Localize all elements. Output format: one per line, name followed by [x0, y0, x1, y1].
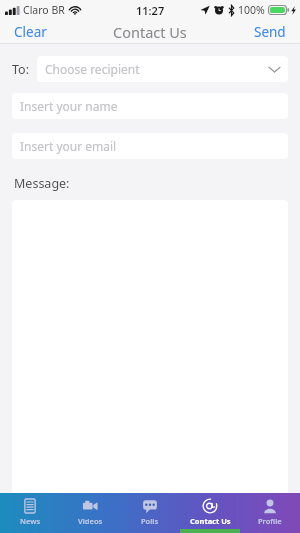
button[interactable]: Profile	[240, 493, 300, 533]
button[interactable]: Videos	[60, 493, 120, 533]
button[interactable]: Polls	[120, 493, 180, 533]
button[interactable]: Insert your name	[12, 93, 288, 119]
staticText: Profile	[258, 516, 282, 526]
staticText: Send	[254, 23, 286, 41]
staticText: Contact Us	[190, 516, 231, 526]
button[interactable]	[12, 200, 288, 520]
button[interactable]: Clear	[0, 20, 61, 44]
staticText: Videos	[78, 516, 103, 526]
staticText: Contact Us	[113, 22, 187, 42]
button[interactable]: Send	[240, 20, 300, 44]
staticText: Clear	[14, 23, 47, 41]
staticText: Insert your email	[20, 138, 117, 154]
staticText: Polls	[141, 516, 159, 526]
staticText: Choose recipient	[45, 61, 269, 77]
staticText: Message:	[14, 175, 70, 192]
staticText: 11:27	[136, 3, 165, 18]
button[interactable]: News	[0, 493, 60, 533]
button[interactable]: Choose recipient	[37, 56, 288, 82]
staticText: Claro BR	[23, 3, 65, 17]
staticText: Insert your name	[20, 98, 118, 114]
button[interactable]: Contact Us	[180, 493, 240, 533]
button[interactable]: Insert your email	[12, 133, 288, 159]
staticText: News	[20, 516, 41, 526]
staticText: 100%	[238, 3, 265, 17]
staticText: To:	[12, 61, 29, 78]
